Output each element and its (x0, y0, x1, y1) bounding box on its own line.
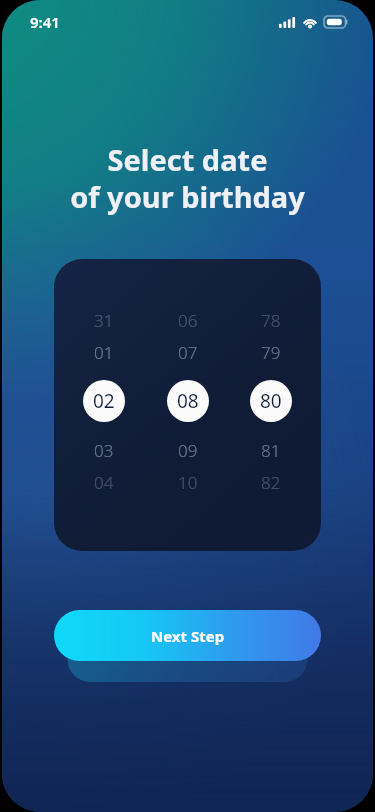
staticText: 01 (94, 341, 114, 364)
button[interactable]: 82 (241, 467, 301, 497)
staticText: 06 (178, 309, 198, 332)
staticText: 78 (261, 309, 281, 332)
button[interactable]: 79 (241, 337, 301, 367)
button[interactable]: 02 (83, 380, 125, 422)
staticText: 82 (261, 471, 281, 494)
staticText: 07 (178, 341, 198, 364)
button[interactable]: 31 (74, 305, 134, 335)
button[interactable]: 10 (158, 467, 218, 497)
staticText: 31 (94, 309, 114, 332)
staticText: 9:41 (30, 12, 60, 32)
staticText: Select date of your birthday (2, 140, 373, 217)
button[interactable]: 06 (158, 305, 218, 335)
staticText: 81 (261, 439, 281, 462)
staticText: 03 (94, 439, 114, 462)
staticText: 09 (178, 439, 198, 462)
button[interactable]: 80 (250, 380, 292, 422)
button[interactable]: 07 (158, 337, 218, 367)
button[interactable]: 78 (241, 305, 301, 335)
staticText: 10 (178, 471, 198, 494)
button[interactable]: 08 (167, 380, 209, 422)
button[interactable]: 03 (74, 435, 134, 465)
staticText: 02 (93, 388, 115, 414)
staticText: 80 (260, 388, 282, 414)
staticText: 08 (177, 388, 199, 414)
button[interactable]: Next Step (54, 610, 321, 661)
button[interactable]: 09 (158, 435, 218, 465)
staticText: Next Step (151, 626, 225, 646)
button[interactable]: 01 (74, 337, 134, 367)
staticText: 79 (261, 341, 281, 364)
button[interactable]: 81 (241, 435, 301, 465)
button[interactable]: 04 (74, 467, 134, 497)
staticText: 04 (94, 471, 114, 494)
